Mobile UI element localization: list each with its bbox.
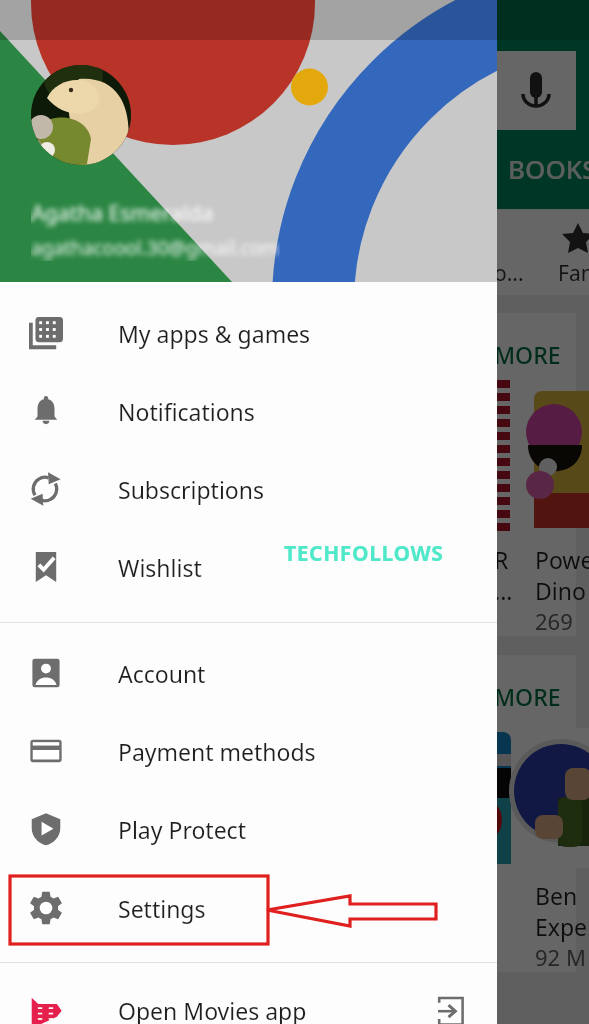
staticText: ... <box>494 575 513 606</box>
button[interactable]: Notifications <box>0 372 497 450</box>
staticText: R <box>494 544 509 575</box>
button[interactable]: Subscriptions <box>0 450 497 528</box>
button[interactable]: My apps & games <box>0 294 497 372</box>
staticText: Account <box>118 658 206 689</box>
staticText: Expe <box>535 911 588 942</box>
button[interactable]: Wishlist <box>0 528 497 606</box>
staticText: BOOKS <box>508 151 589 186</box>
staticText: MORE <box>494 681 561 712</box>
staticText: My apps & games <box>118 318 311 349</box>
staticText: MORE <box>494 339 561 370</box>
staticText: Wishlist <box>118 552 202 583</box>
button[interactable]: Payment methods <box>0 712 497 790</box>
button[interactable]: Open Movies app <box>0 971 497 1024</box>
staticText: Powe <box>535 544 589 575</box>
button[interactable]: Account <box>0 634 497 712</box>
staticText: 269 <box>535 606 579 636</box>
staticText: Agatha Esmeralda <box>31 199 214 228</box>
button[interactable]: Profile photo <box>31 65 131 165</box>
button[interactable]: Settings <box>0 869 497 947</box>
button[interactable]: Open app <box>435 995 465 1024</box>
staticText: Dino <box>535 575 586 606</box>
button[interactable]: Play Protect <box>0 790 497 868</box>
staticText: o... <box>494 259 524 288</box>
staticText: Fan <box>558 259 589 288</box>
staticText: Notifications <box>118 396 255 427</box>
staticText: Play Protect <box>118 814 246 845</box>
staticText: Payment methods <box>118 736 316 767</box>
staticText: Open Movies app <box>118 995 307 1024</box>
staticText: 92 M <box>535 942 586 972</box>
staticText: Subscriptions <box>118 474 265 505</box>
staticText: Settings <box>118 893 206 924</box>
staticText: TECHFOLLOWS <box>284 539 444 568</box>
staticText: agathacoool.30@gmail.com <box>31 235 280 261</box>
staticText: Ben <box>535 880 584 911</box>
